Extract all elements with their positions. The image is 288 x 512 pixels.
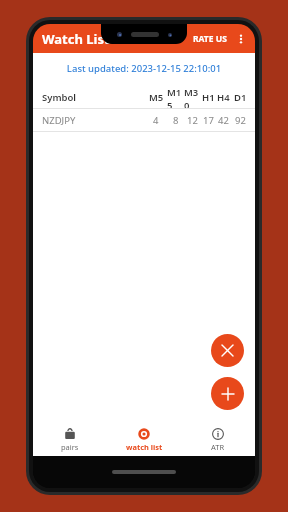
staticText: Watch List [42, 30, 110, 48]
staticText: M5 [149, 91, 164, 104]
staticText: Last updated: 2023-12-15 22:10:01 [33, 62, 255, 75]
button[interactable]: Add [211, 377, 244, 410]
staticText: Symbol [42, 91, 145, 104]
staticText: 42 [218, 114, 229, 127]
staticText: 8 [173, 114, 179, 127]
staticText: watch list [126, 442, 163, 452]
staticText: pairs [61, 442, 79, 452]
staticText: 12 [187, 114, 198, 127]
staticText: RATE US [193, 33, 227, 45]
button[interactable]: pairs [33, 423, 107, 456]
button[interactable]: RATE US [189, 30, 231, 48]
button[interactable]: NZDJPY [33, 109, 255, 131]
staticText: 4 [153, 114, 159, 127]
staticText: D1 [234, 91, 247, 104]
button[interactable]: More options [231, 29, 251, 49]
staticText: H4 [217, 91, 230, 104]
staticText: NZDJPY [42, 114, 145, 127]
staticText: M15 [167, 86, 184, 108]
staticText: M30 [184, 86, 201, 108]
staticText: 17 [203, 114, 214, 127]
staticText: H1 [202, 91, 215, 104]
button[interactable]: watch list [107, 423, 181, 456]
staticText: 92 [235, 114, 246, 127]
button[interactable]: ATR [181, 423, 255, 456]
staticText: ATR [211, 442, 225, 452]
button[interactable]: Close [211, 334, 244, 367]
